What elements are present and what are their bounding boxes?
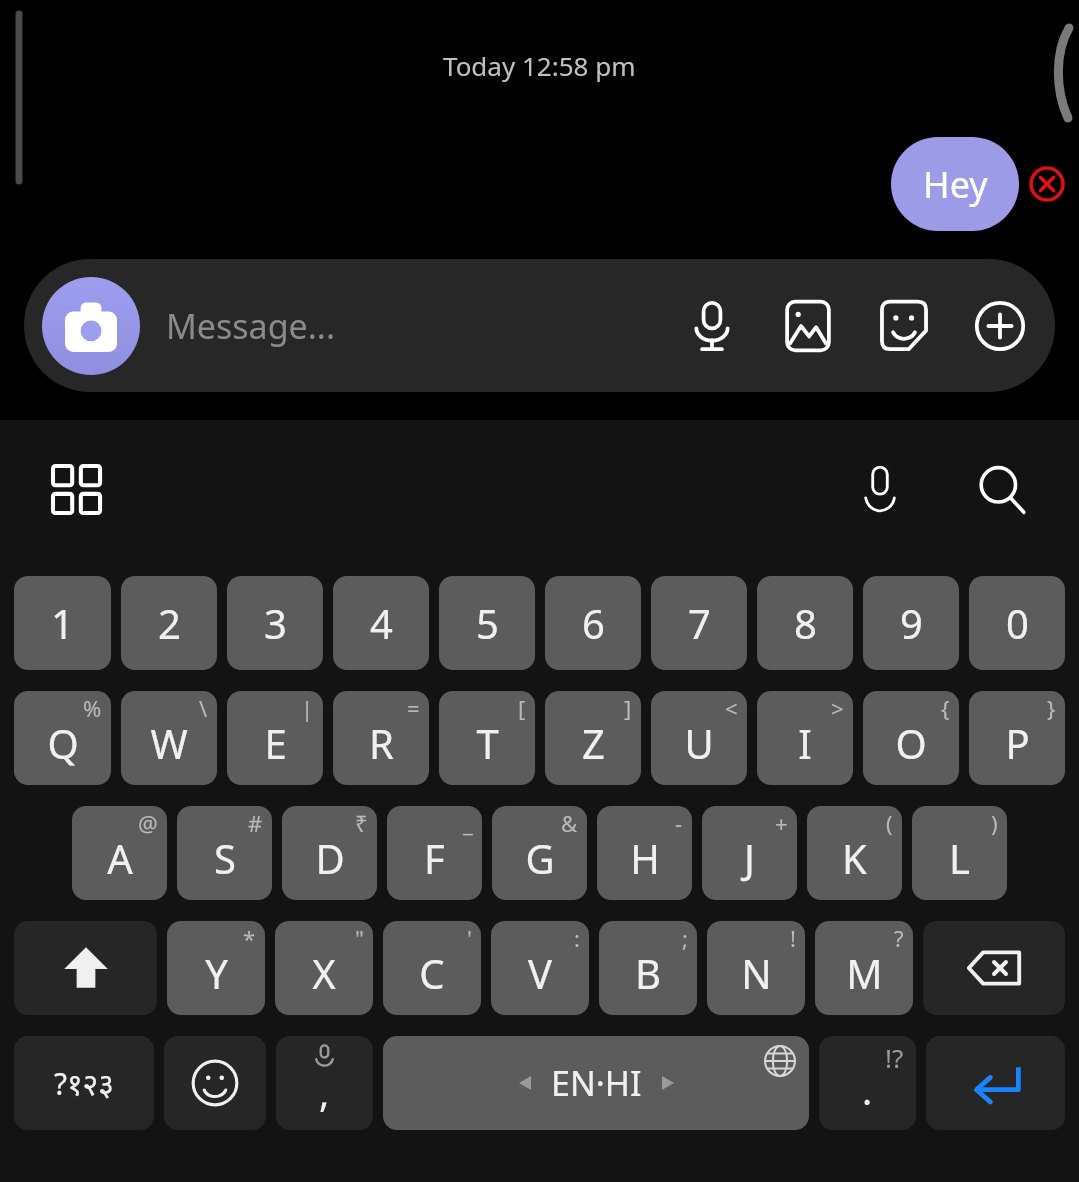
staticText: J: [744, 831, 755, 885]
button[interactable]: Shift: [14, 921, 157, 1015]
button[interactable]: [: [439, 691, 535, 785]
staticText: (: [886, 808, 893, 838]
staticText: L: [949, 831, 970, 885]
staticText: 6: [582, 596, 605, 650]
button[interactable]: #: [177, 806, 272, 900]
button[interactable]: ;: [599, 921, 697, 1015]
button[interactable]: Search: [965, 453, 1039, 527]
staticText: ?: [894, 923, 904, 953]
button[interactable]: {: [863, 691, 959, 785]
staticText: D: [315, 831, 345, 885]
button[interactable]: }: [969, 691, 1065, 785]
staticText: [: [518, 693, 526, 723]
button[interactable]: ?१२३: [14, 1036, 154, 1130]
staticText: T: [476, 716, 499, 770]
staticText: Today 12:58 pm: [443, 48, 636, 83]
button[interactable]: ': [383, 921, 481, 1015]
staticText: }: [1047, 693, 1056, 723]
button[interactable]: >: [757, 691, 853, 785]
button[interactable]: Enter: [926, 1036, 1065, 1130]
button[interactable]: ]: [545, 691, 641, 785]
button[interactable]: Emoji: [164, 1036, 266, 1130]
button[interactable]: \: [121, 691, 217, 785]
staticText: A: [107, 831, 133, 885]
staticText: =: [407, 693, 420, 723]
button[interactable]: Hey: [891, 137, 1019, 231]
button[interactable]: !?: [819, 1036, 916, 1130]
button[interactable]: :: [491, 921, 589, 1015]
button[interactable]: Message not sent: [1025, 162, 1069, 206]
button[interactable]: -: [597, 806, 692, 900]
button[interactable]: |: [227, 691, 323, 785]
button[interactable]: %: [14, 691, 111, 785]
staticText: S: [214, 831, 236, 885]
button[interactable]: ,: [276, 1036, 373, 1130]
button[interactable]: !: [707, 921, 805, 1015]
button[interactable]: &: [492, 806, 587, 900]
button[interactable]: 2: [121, 576, 217, 670]
button[interactable]: 3: [227, 576, 323, 670]
staticText: #: [248, 808, 263, 838]
button[interactable]: Voice message: [675, 289, 749, 363]
staticText: &: [561, 808, 578, 838]
staticText: 3: [264, 596, 287, 650]
button[interactable]: Message...: [166, 303, 675, 349]
staticText: |: [301, 693, 314, 723]
staticText: Q: [47, 716, 79, 770]
staticText: 7: [688, 596, 711, 650]
button[interactable]: 4: [333, 576, 429, 670]
button[interactable]: ): [912, 806, 1007, 900]
button[interactable]: 7: [651, 576, 747, 670]
staticText: X: [312, 946, 336, 1000]
staticText: K: [842, 831, 867, 885]
staticText: C: [419, 946, 445, 1000]
staticText: %: [83, 693, 102, 723]
staticText: _: [463, 808, 473, 838]
button[interactable]: Space, EN HI: [383, 1036, 809, 1130]
staticText: 2: [158, 596, 181, 650]
staticText: !: [790, 923, 796, 953]
staticText: ,: [319, 1066, 330, 1118]
staticText: ]: [624, 693, 632, 723]
staticText: EN·HI: [551, 1060, 642, 1106]
staticText: I: [798, 716, 812, 770]
button[interactable]: ₹: [282, 806, 377, 900]
button[interactable]: Keyboard menu: [40, 453, 114, 527]
button[interactable]: Backspace: [923, 921, 1065, 1015]
staticText: +: [775, 808, 788, 838]
button[interactable]: Voice input: [843, 453, 917, 527]
button[interactable]: ": [275, 921, 373, 1015]
button[interactable]: More options: [963, 289, 1037, 363]
staticText: Z: [582, 716, 605, 770]
button[interactable]: (: [807, 806, 902, 900]
staticText: 8: [794, 596, 817, 650]
button[interactable]: 8: [757, 576, 853, 670]
button[interactable]: Gallery: [771, 289, 845, 363]
button[interactable]: <: [651, 691, 747, 785]
button[interactable]: 0: [969, 576, 1065, 670]
staticText: {: [941, 693, 950, 723]
button[interactable]: 9: [863, 576, 959, 670]
staticText: ;: [682, 923, 688, 953]
staticText: ₹: [355, 808, 368, 838]
staticText: R: [369, 716, 394, 770]
button[interactable]: 6: [545, 576, 641, 670]
button[interactable]: @: [72, 806, 167, 900]
button[interactable]: 5: [439, 576, 535, 670]
staticText: E: [264, 716, 287, 770]
button[interactable]: ?: [815, 921, 913, 1015]
button[interactable]: Camera: [42, 277, 140, 375]
staticText: M: [846, 946, 883, 1000]
button[interactable]: 1: [14, 576, 111, 670]
staticText: !?: [885, 1040, 904, 1075]
staticText: ): [991, 808, 998, 838]
staticText: V: [528, 946, 552, 1000]
staticText: F: [424, 831, 445, 885]
button[interactable]: +: [702, 806, 797, 900]
button[interactable]: Stickers: [867, 289, 941, 363]
button[interactable]: =: [333, 691, 429, 785]
staticText: P: [1005, 716, 1030, 770]
button[interactable]: *: [167, 921, 265, 1015]
staticText: *: [243, 923, 256, 953]
button[interactable]: _: [387, 806, 482, 900]
